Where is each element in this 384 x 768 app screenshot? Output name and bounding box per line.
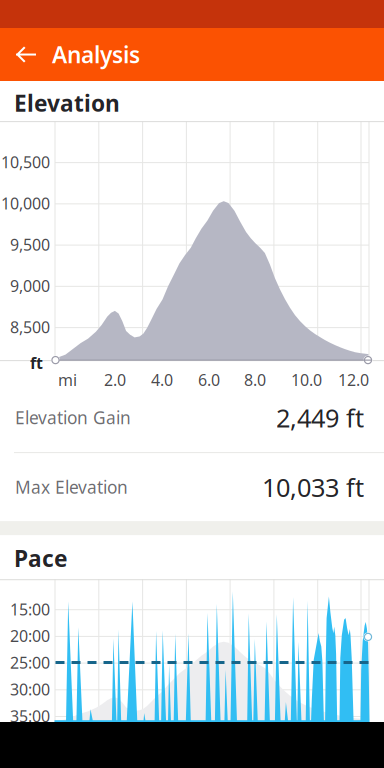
staticText: mi	[58, 369, 77, 390]
staticText: 8,500	[10, 316, 50, 338]
staticText: 35:00	[10, 705, 50, 727]
staticText: 9,500	[10, 234, 50, 255]
staticText: Pace	[14, 543, 68, 573]
staticText: Elevation	[14, 88, 120, 118]
staticText: 10.0	[291, 369, 322, 390]
staticText: Max Elevation	[15, 476, 128, 499]
staticText: 2,449 ft	[276, 401, 364, 434]
staticText: 15:00	[10, 599, 50, 620]
staticText: 4.0	[151, 369, 173, 390]
staticText: Analysis	[52, 39, 140, 69]
button[interactable]: Back	[0, 28, 52, 81]
staticText: 9,000	[10, 275, 50, 296]
staticText: 6.0	[198, 369, 220, 390]
staticText: 30:00	[10, 679, 50, 700]
staticText: 10,000	[1, 193, 50, 214]
staticText: 20:00	[10, 625, 50, 646]
staticText: 10,033 ft	[262, 470, 364, 504]
staticText: 10,500	[1, 151, 50, 173]
staticText: 25:00	[10, 652, 50, 673]
staticText: 2.0	[104, 369, 126, 390]
staticText: ft	[30, 352, 43, 373]
staticText: 8.0	[244, 369, 266, 390]
staticText: Elevation Gain	[15, 406, 131, 429]
staticText: 12.0	[338, 369, 369, 390]
